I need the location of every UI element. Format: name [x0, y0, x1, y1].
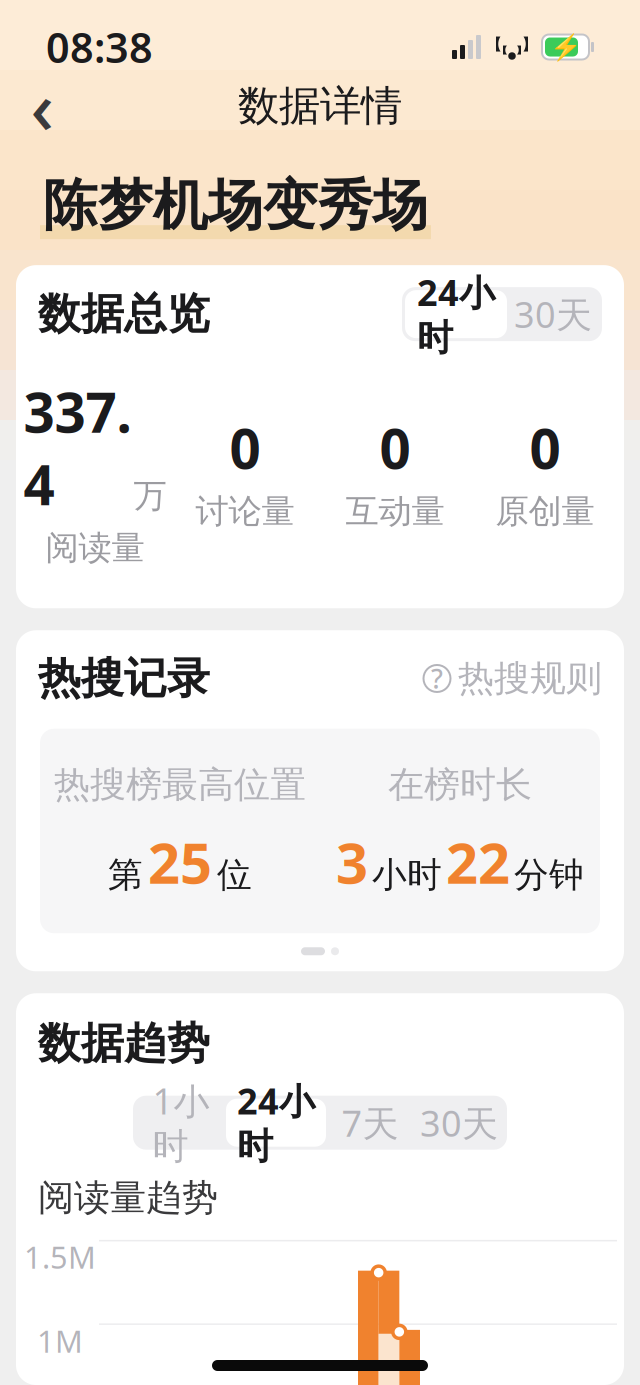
- staticText: 阅读量趋势: [38, 1176, 218, 1220]
- staticText: 3: [336, 825, 368, 899]
- staticText: 数据趋势: [38, 1017, 210, 1070]
- button[interactable]: 24小时: [226, 1099, 326, 1147]
- staticText: 原创量: [495, 491, 594, 532]
- staticText: 阅读量: [45, 527, 144, 568]
- staticText: 0: [229, 411, 260, 484]
- staticText: 0: [529, 411, 560, 484]
- staticText: 位: [217, 854, 252, 896]
- staticText: 30天: [420, 1099, 498, 1147]
- staticText: 24小时: [237, 1077, 315, 1169]
- staticText: 337.4: [23, 375, 131, 520]
- staticText: 热搜记录: [38, 652, 210, 705]
- button[interactable]: 7天: [326, 1099, 414, 1147]
- staticText: 0: [379, 411, 410, 484]
- staticText: 24小时: [417, 268, 495, 360]
- button[interactable]: 30天: [414, 1099, 504, 1147]
- staticText: 7天: [341, 1099, 398, 1147]
- staticText: 热搜规则: [458, 656, 602, 701]
- staticText: ⚡: [549, 32, 581, 61]
- staticText: 讨论量: [195, 491, 294, 532]
- staticText: 08:38: [46, 20, 153, 74]
- staticText: 万: [133, 475, 166, 516]
- button[interactable]: 30天: [507, 290, 599, 338]
- staticText: 互动量: [345, 491, 444, 532]
- button[interactable]: 24小时: [405, 290, 507, 338]
- staticText: 22: [446, 825, 510, 899]
- staticText: 数据详情: [238, 81, 402, 131]
- button[interactable]: ?: [423, 656, 602, 701]
- staticText: 30天: [514, 290, 592, 338]
- staticText: 第: [108, 854, 143, 896]
- staticText: 1.5M: [24, 1236, 96, 1277]
- staticText: ‹: [30, 58, 53, 154]
- staticText: ?: [431, 661, 443, 696]
- button[interactable]: 返回: [10, 73, 74, 139]
- staticText: 小时: [372, 854, 442, 896]
- staticText: 在榜时长: [388, 763, 532, 807]
- staticText: 数据总览: [38, 288, 210, 340]
- staticText: 1小时: [152, 1077, 209, 1169]
- staticText: 1M: [37, 1320, 83, 1361]
- staticText: 陈梦机场变秀场: [43, 172, 428, 239]
- staticText: 热搜榜最高位置: [54, 763, 306, 807]
- staticText: 分钟: [514, 854, 584, 896]
- staticText: 25: [148, 825, 212, 899]
- button[interactable]: 1小时: [136, 1099, 226, 1147]
